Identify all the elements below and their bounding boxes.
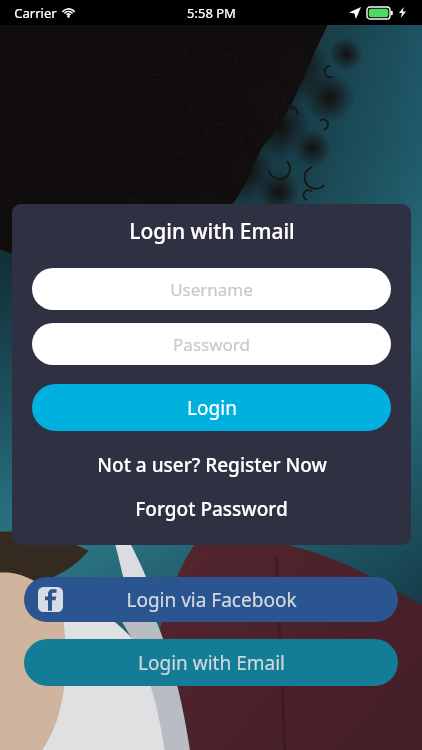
button[interactable]: Not a user? Register Now xyxy=(32,448,391,482)
staticText: Password xyxy=(173,333,250,356)
button[interactable]: Login xyxy=(32,384,391,431)
other: Facebook xyxy=(38,587,63,612)
staticText: Not a user? Register Now xyxy=(97,452,327,478)
staticText: 5:58 PM xyxy=(187,4,236,22)
staticText: Forgot Password xyxy=(135,496,288,522)
staticText: Login xyxy=(187,395,237,421)
button[interactable]: Username xyxy=(32,268,391,310)
button[interactable]: Login with Email xyxy=(24,639,398,686)
staticText: Login with Email xyxy=(129,217,295,246)
staticText: Login with Email xyxy=(138,650,285,676)
staticText: Login via Facebook xyxy=(126,587,297,613)
staticText: Carrier xyxy=(14,4,57,22)
button[interactable]: Forgot Password xyxy=(32,492,391,526)
button[interactable]: Facebook xyxy=(24,577,398,622)
staticText: Username xyxy=(170,278,253,301)
button[interactable]: Password xyxy=(32,323,391,365)
